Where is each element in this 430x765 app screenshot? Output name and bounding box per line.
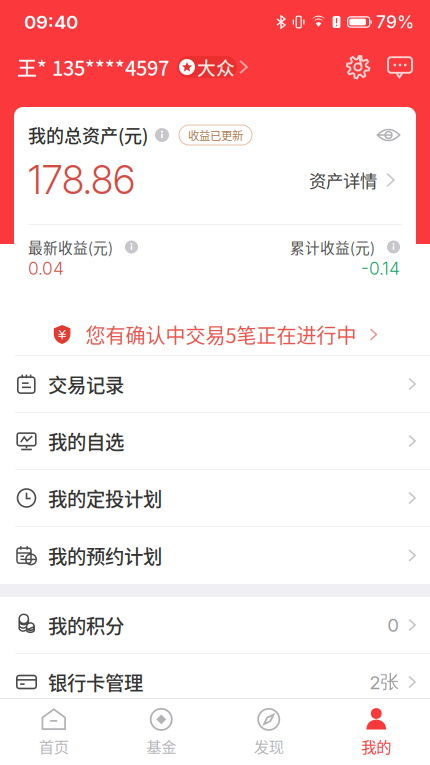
staticText: 首页 — [39, 735, 69, 757]
staticText: 发现 — [254, 735, 284, 757]
staticText: 我的预约计划 — [48, 541, 162, 569]
button[interactable]: 基金 — [107, 699, 215, 765]
staticText: 大众 — [197, 53, 235, 80]
staticText: 您有确认中交易5笔正在进行中 — [86, 320, 357, 349]
button[interactable]: 我的预约计划 — [0, 527, 430, 584]
button[interactable]: 隐藏金额 — [376, 127, 401, 142]
staticText: 我的积分 — [48, 611, 124, 639]
button[interactable]: 我的自选 — [0, 413, 430, 470]
button[interactable]: 王* 135****4597 — [17, 52, 248, 81]
staticText: 我的自选 — [48, 427, 124, 455]
staticText: 累计收益(元) — [290, 236, 375, 258]
staticText: 我的 — [361, 735, 391, 757]
button[interactable]: 您有确认中交易5笔正在进行中 — [0, 282, 430, 355]
button[interactable]: 交易记录 — [0, 356, 430, 413]
staticText: 09:40 — [24, 11, 78, 33]
staticText: 基金 — [146, 735, 176, 757]
button[interactable]: 我的 — [322, 699, 430, 765]
staticText: 交易记录 — [48, 370, 124, 398]
staticText: 0 — [387, 614, 399, 636]
button[interactable]: 我的积分 — [0, 597, 430, 654]
button[interactable]: 资产详情 — [309, 167, 395, 193]
staticText: 178.86 — [28, 157, 135, 203]
button[interactable]: 设置 — [344, 53, 372, 81]
staticText: 资产详情 — [309, 167, 377, 193]
button[interactable]: 我的定投计划 — [0, 470, 430, 527]
staticText: 79% — [376, 11, 414, 32]
staticText: 我的总资产(元) — [28, 122, 148, 148]
staticText: 银行卡管理 — [48, 668, 143, 696]
button[interactable]: 银行卡管理 — [0, 654, 430, 711]
button[interactable]: 发现 — [215, 699, 322, 765]
staticText: 王* 135****4597 — [17, 52, 169, 81]
staticText: 收益已更新 — [188, 127, 243, 143]
staticText: 我的定投计划 — [48, 484, 162, 512]
staticText: -0.14 — [361, 258, 400, 279]
staticText: 0.04 — [28, 258, 64, 279]
button[interactable]: 消息 — [386, 54, 414, 80]
button[interactable]: 首页 — [0, 699, 107, 765]
staticText: 最新收益(元) — [28, 236, 113, 258]
staticText: 2张 — [369, 670, 399, 694]
